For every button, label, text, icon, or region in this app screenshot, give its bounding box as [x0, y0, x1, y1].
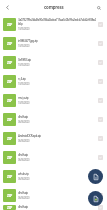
staticText: ZIP: [7, 79, 13, 84]
staticText: ZIP: [7, 22, 13, 27]
staticText: 10/05/2020: [18, 101, 30, 105]
button[interactable]: Select file: [98, 117, 103, 122]
staticText: ZIP: [7, 205, 13, 210]
button[interactable]: Select file: [98, 60, 103, 65]
staticText: dhdh.zip: [18, 153, 28, 157]
button[interactable]: Compress files: [88, 169, 103, 184]
button[interactable]: Compress with password: [88, 191, 103, 206]
button[interactable]: Search: [93, 2, 104, 13]
staticText: n_4.zip: [18, 77, 26, 81]
button[interactable]: Select file: [98, 174, 103, 179]
staticText: 10/05/2020: [18, 82, 30, 86]
staticText: compress: [44, 4, 64, 10]
staticText: ZIP: [7, 41, 13, 46]
staticText: 3a07327f9e2bk4fx90c094a2bdea715aa3cf2b99…: [18, 18, 96, 26]
staticText: AndroidOCR.apk.zip: [18, 134, 41, 138]
staticText: ZIP: [7, 136, 13, 141]
button[interactable]: ZIP: [0, 186, 107, 205]
staticText: ZIP: [7, 117, 13, 122]
button[interactable]: ZIP: [0, 110, 107, 129]
button[interactable]: ZIP: [0, 72, 107, 91]
button[interactable]: ZIP: [0, 34, 107, 53]
staticText: 10/05/2020: [18, 44, 30, 48]
staticText: 10/05/2020: [18, 27, 30, 31]
staticText: 06/06/2020: [18, 177, 30, 181]
button[interactable]: ZIP: [0, 205, 107, 210]
button[interactable]: Back: [1, 1, 13, 13]
button[interactable]: ZIP: [0, 15, 107, 34]
button[interactable]: ZIP: [0, 91, 107, 110]
staticText: ZIP: [7, 193, 13, 198]
staticText: ZIP: [7, 155, 13, 160]
button[interactable]: Select file: [98, 79, 103, 84]
button[interactable]: Select file: [98, 205, 103, 210]
staticText: 10/05/2020: [18, 63, 30, 67]
button[interactable]: Select file: [98, 155, 103, 160]
staticText: whuh.zip: [18, 172, 29, 176]
staticText: 06/06/2020: [18, 139, 30, 143]
staticText: in9863477.jpg.zip: [18, 39, 38, 43]
button[interactable]: Select file: [98, 98, 103, 103]
staticText: ZIP: [7, 174, 13, 179]
staticText: dhdh.zip: [18, 115, 28, 119]
button[interactable]: ZIP: [0, 167, 107, 186]
staticText: dhdh.zip: [18, 191, 28, 195]
button[interactable]: Select file: [98, 22, 103, 27]
button[interactable]: ZIP: [0, 148, 107, 167]
staticText: mvi_a.zip: [18, 96, 29, 100]
button[interactable]: Select file: [98, 41, 103, 46]
button[interactable]: Select file: [98, 136, 103, 141]
staticText: 06/06/2020: [18, 120, 30, 124]
staticText: ZIP: [7, 98, 13, 103]
staticText: dhdh.zip: [18, 205, 28, 209]
staticText: 06/06/2020: [18, 196, 30, 200]
button[interactable]: Select file: [98, 193, 103, 198]
button[interactable]: ZIP: [0, 53, 107, 72]
button[interactable]: ZIP: [0, 129, 107, 148]
staticText: 06/06/2020: [18, 158, 30, 162]
staticText: 0e59f03.zip: [18, 58, 31, 62]
staticText: ZIP: [7, 60, 13, 65]
